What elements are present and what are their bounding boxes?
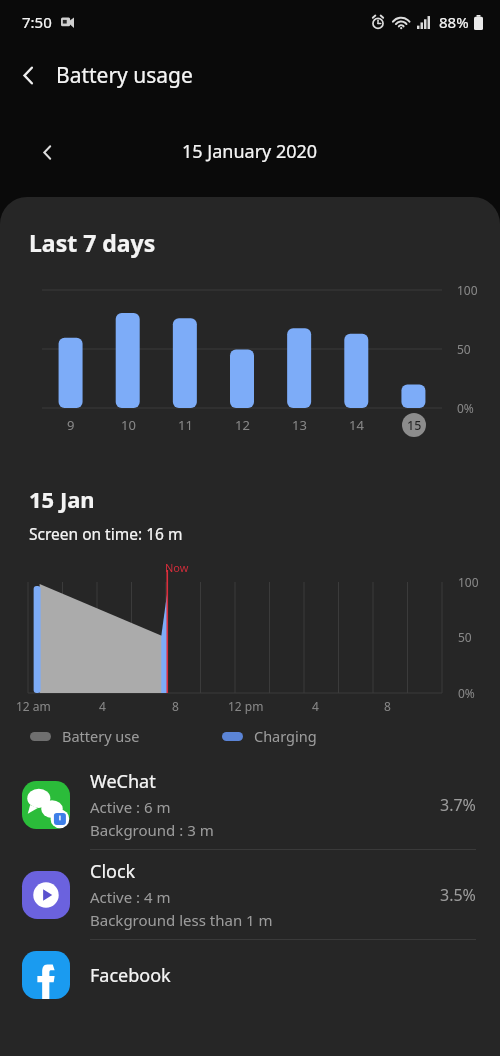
staticText: 50 — [458, 629, 472, 645]
staticText: WeChat — [90, 769, 156, 794]
staticText: 100 — [458, 574, 479, 590]
button[interactable]: Back — [0, 47, 56, 103]
staticText: 0% — [458, 685, 475, 701]
staticText: 4 — [99, 698, 106, 714]
button[interactable]: 15 — [385, 413, 442, 437]
button[interactable]: Previous day — [24, 129, 70, 175]
staticText: 3.7% — [440, 794, 476, 816]
staticText: Battery usage — [56, 61, 193, 90]
button[interactable]: 11 — [157, 413, 214, 437]
staticText: 12 pm — [228, 698, 264, 714]
staticText: 9 — [67, 416, 75, 434]
staticText: 12 — [235, 416, 250, 434]
button[interactable]: 13 — [271, 413, 328, 437]
staticText: Last 7 days — [29, 227, 156, 258]
staticText: 15 — [407, 417, 422, 434]
staticText: 13 — [292, 416, 307, 434]
staticText: 10 — [121, 416, 136, 434]
button[interactable]: 14 — [328, 413, 385, 437]
staticText: Background less than 1 m — [90, 910, 273, 930]
button[interactable]: Clock — [0, 850, 500, 940]
staticText: 14 — [349, 416, 364, 434]
staticText: 100 — [457, 282, 478, 298]
staticText: Battery use — [62, 726, 140, 746]
staticText: Clock — [90, 859, 136, 884]
staticText: Facebook — [90, 963, 171, 988]
button[interactable]: 12 — [214, 413, 271, 437]
staticText: 11 — [178, 416, 193, 434]
staticText: 8 — [172, 698, 179, 714]
staticText: Active : 4 m — [90, 887, 171, 907]
staticText: 15 Jan — [29, 484, 95, 514]
button[interactable]: 10 — [100, 413, 157, 437]
staticText: Charging — [254, 726, 317, 746]
staticText: 4 — [312, 698, 319, 714]
button[interactable]: WeChat — [0, 760, 500, 850]
staticText: 7:50 — [22, 12, 52, 32]
staticText: 50 — [457, 341, 471, 357]
staticText: 15 January 2020 — [182, 139, 318, 164]
staticText: Background : 3 m — [90, 820, 214, 840]
staticText: Now — [165, 560, 189, 575]
button[interactable]: 9 — [42, 413, 100, 437]
staticText: 0% — [457, 400, 474, 416]
staticText: 88% — [439, 12, 469, 32]
staticText: 3.5% — [440, 884, 476, 906]
staticText: 8 — [384, 698, 391, 714]
staticText: 12 am — [16, 698, 51, 714]
button[interactable]: Facebook — [0, 940, 500, 1010]
staticText: Active : 6 m — [90, 797, 171, 817]
staticText: Screen on time: 16 m — [29, 523, 183, 544]
